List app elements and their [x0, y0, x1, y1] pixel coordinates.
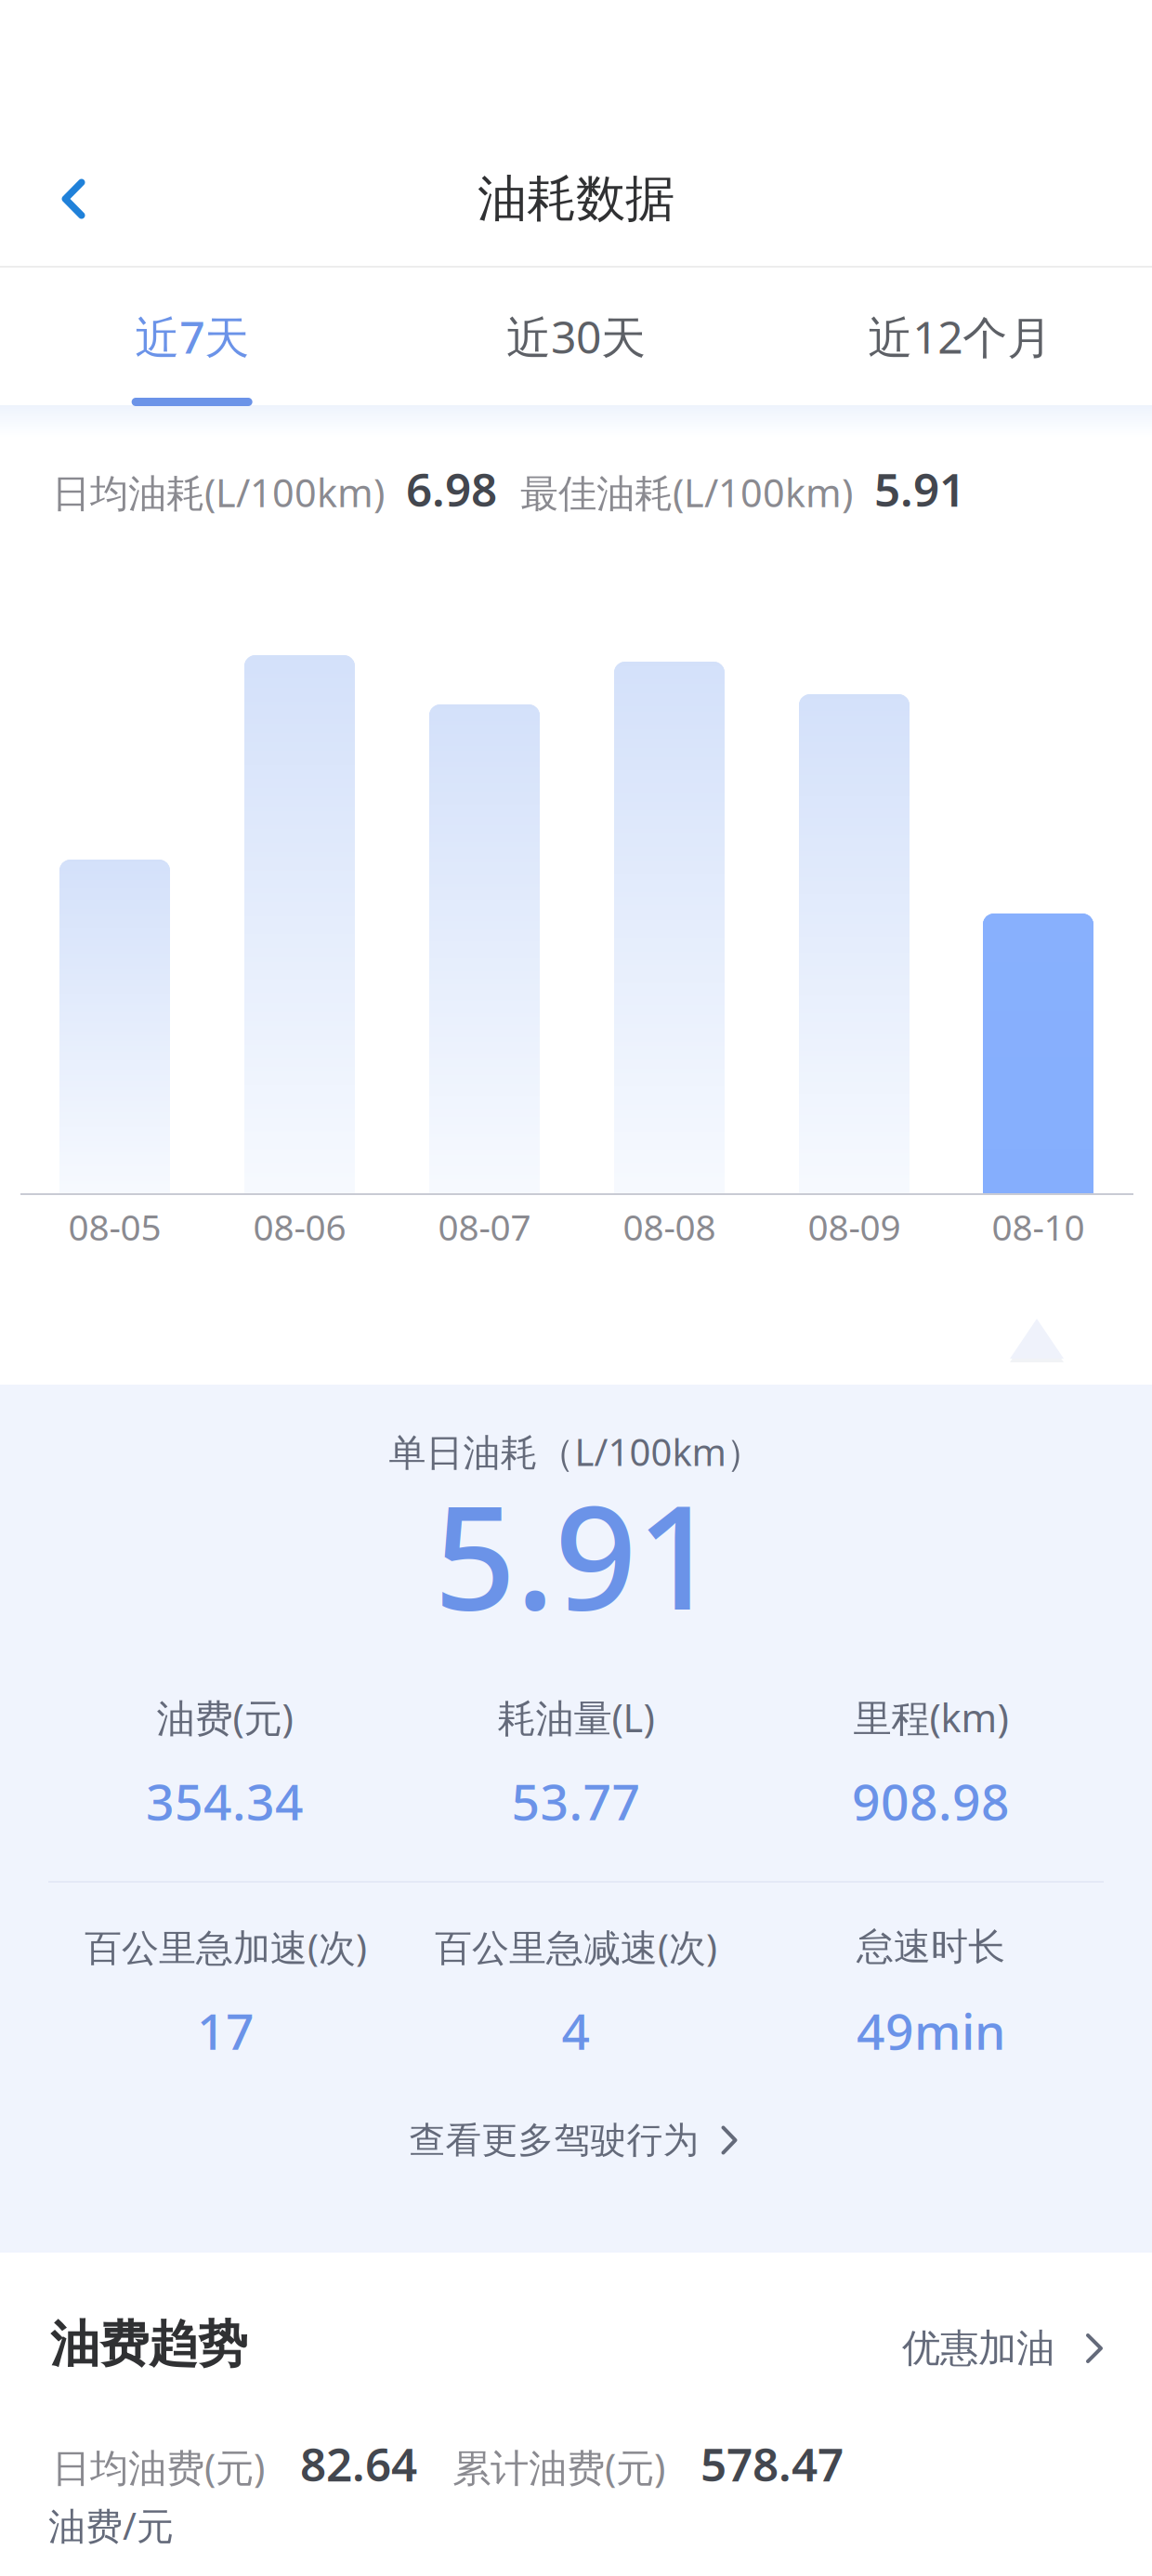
staticText: 6.98	[406, 458, 497, 519]
staticText: 08-10	[992, 1203, 1085, 1250]
staticText: 08-08	[623, 1203, 716, 1250]
staticText: 578.47	[700, 2433, 844, 2494]
staticText: 最佳油耗(L/100km)	[520, 467, 853, 518]
staticText: 908.98	[852, 1768, 1010, 1834]
staticText: 油费/元	[48, 2501, 174, 2550]
button[interactable]: 近30天	[384, 268, 768, 405]
button[interactable]: 近7天	[0, 268, 384, 405]
button[interactable]: 08-05	[22, 595, 207, 1247]
staticText: 油耗数据	[478, 168, 674, 229]
staticText: 怠速时长	[857, 1924, 1005, 1970]
staticText: 5.91	[434, 1458, 718, 1649]
staticText: 优惠加油	[902, 2325, 1054, 2372]
staticText: 08-07	[438, 1203, 531, 1250]
staticText: 4	[562, 1998, 590, 2063]
staticText: 354.34	[146, 1768, 304, 1834]
staticText: 近12个月	[868, 307, 1052, 366]
staticText: 查看更多驾驶行为	[409, 2118, 699, 2162]
staticText: 17	[197, 1998, 255, 2063]
staticText: 耗油量(L)	[497, 1692, 655, 1743]
button[interactable]: 查看更多驾驶行为	[0, 2098, 1149, 2182]
staticText: 油费趋势	[50, 2314, 247, 2375]
button[interactable]: 08-09	[762, 595, 947, 1247]
staticText: 08-09	[808, 1203, 901, 1250]
button[interactable]: 返回	[19, 144, 128, 254]
button[interactable]: 08-07	[392, 595, 577, 1247]
button[interactable]: 08-08	[577, 595, 762, 1247]
staticText: 百公里急减速(次)	[435, 1922, 717, 1971]
staticText: 49min	[857, 1998, 1005, 2063]
button[interactable]: 优惠加油	[902, 2316, 1152, 2381]
button[interactable]: 08-10	[946, 595, 1131, 1247]
staticText: 08-05	[68, 1203, 161, 1250]
staticText: 日均油费(元)	[52, 2441, 265, 2492]
staticText: 近7天	[135, 307, 249, 366]
staticText: 近30天	[506, 307, 646, 366]
staticText: 5.91	[874, 458, 965, 519]
staticText: 53.77	[511, 1768, 641, 1834]
button[interactable]: 近12个月	[768, 268, 1152, 405]
staticText: 百公里急加速(次)	[85, 1922, 367, 1971]
button[interactable]: 08-06	[207, 595, 392, 1247]
staticText: 里程(km)	[853, 1692, 1008, 1743]
staticText: 82.64	[300, 2433, 417, 2494]
staticText: 累计油费(元)	[452, 2441, 665, 2492]
staticText: 单日油耗（L/100km）	[389, 1427, 763, 1476]
staticText: 08-06	[253, 1203, 346, 1250]
staticText: 日均油耗(L/100km)	[52, 467, 385, 518]
staticText: 油费(元)	[157, 1692, 293, 1743]
